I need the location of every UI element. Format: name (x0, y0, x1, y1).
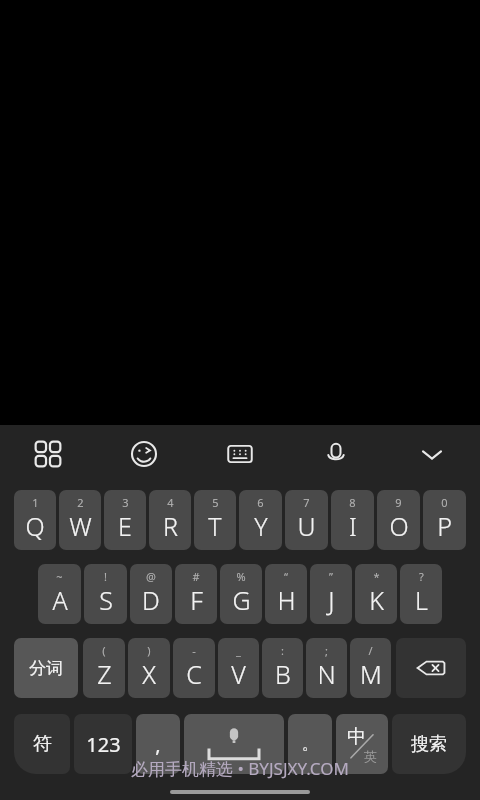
staticText: ? (419, 569, 424, 584)
staticText: 2 (77, 495, 84, 510)
staticText: F (190, 583, 203, 617)
button[interactable]: Backspace (396, 638, 466, 698)
staticText: 符 (33, 732, 52, 756)
staticText: J (328, 583, 335, 617)
staticText: “ (284, 569, 288, 584)
staticText: L (415, 583, 428, 617)
button[interactable]: 分词 (14, 638, 78, 698)
button[interactable]: Chinese English toggle (336, 714, 388, 774)
button[interactable]: 6 (239, 490, 282, 550)
staticText: O (389, 509, 409, 543)
button[interactable]: 7 (285, 490, 328, 550)
staticText: X (142, 657, 156, 691)
staticText: E (118, 509, 132, 543)
staticText: 中 (347, 725, 366, 749)
staticText: - (192, 643, 196, 658)
staticText: Z (97, 657, 112, 691)
staticText: ; (325, 643, 328, 658)
button[interactable]: - (173, 638, 215, 698)
staticText: ) (147, 643, 151, 658)
button[interactable]: _ (218, 638, 259, 698)
button[interactable]: 搜索 (392, 714, 466, 774)
staticText: # (192, 569, 200, 584)
staticText: 5 (212, 495, 219, 510)
staticText: 搜索 (411, 733, 447, 756)
staticText: , (155, 731, 161, 758)
button[interactable]: Emoji (96, 425, 192, 483)
staticText: 8 (349, 495, 356, 510)
button[interactable]: 符 (14, 714, 70, 774)
staticText: K (369, 583, 384, 617)
staticText: _ (236, 643, 241, 658)
button[interactable]: Voice input (288, 425, 384, 483)
staticText: A (52, 583, 68, 617)
staticText: @ (146, 569, 156, 584)
button[interactable]: 1 (14, 490, 56, 550)
button[interactable]: 2 (59, 490, 101, 550)
staticText: N (317, 657, 336, 691)
button[interactable]: “ (265, 564, 307, 624)
staticText: ( (102, 643, 106, 658)
button[interactable]: # (175, 564, 217, 624)
staticText: G (232, 583, 251, 617)
staticText: 6 (257, 495, 264, 510)
staticText: 3 (122, 495, 129, 510)
staticText: M (360, 657, 382, 691)
button[interactable]: 。 (288, 714, 332, 774)
button[interactable]: : (262, 638, 303, 698)
button[interactable]: 4 (149, 490, 191, 550)
button[interactable]: Space (184, 714, 284, 774)
button[interactable]: ( (83, 638, 125, 698)
button[interactable]: ! (84, 564, 127, 624)
staticText: R (163, 509, 178, 543)
staticText: P (437, 509, 452, 543)
staticText: / (368, 643, 373, 658)
button[interactable]: Keyboard layout (192, 425, 288, 483)
staticText: S (99, 583, 113, 617)
button[interactable]: 5 (194, 490, 236, 550)
button[interactable]: ) (128, 638, 170, 698)
button[interactable]: * (355, 564, 397, 624)
staticText: 9 (395, 495, 402, 510)
staticText: 1 (32, 495, 39, 510)
staticText: V (231, 657, 246, 691)
staticText: : (281, 643, 284, 658)
staticText: ! (104, 569, 107, 584)
staticText: 123 (86, 731, 121, 758)
button[interactable]: ” (310, 564, 352, 624)
button[interactable]: Hide keyboard (384, 425, 480, 483)
button[interactable]: ~ (38, 564, 81, 624)
staticText: D (142, 583, 160, 617)
staticText: Q (25, 509, 45, 543)
staticText: U (297, 509, 316, 543)
staticText: I (349, 509, 357, 543)
staticText: 0 (441, 495, 448, 510)
staticText: H (277, 583, 296, 617)
staticText: % (236, 569, 246, 584)
staticText: 4 (167, 495, 174, 510)
staticText: T (208, 509, 222, 543)
staticText: 7 (303, 495, 310, 510)
staticText: 。 (302, 734, 318, 754)
button[interactable]: 9 (377, 490, 420, 550)
staticText: W (69, 509, 92, 543)
button[interactable]: 123 (74, 714, 132, 774)
button[interactable]: 8 (331, 490, 374, 550)
staticText: C (186, 657, 202, 691)
staticText: 分词 (29, 658, 63, 679)
button[interactable]: ? (400, 564, 442, 624)
button[interactable]: ; (306, 638, 347, 698)
staticText: 必用手机精选 • BYJSJXY.COM (131, 757, 349, 780)
staticText: 英 (364, 748, 377, 764)
button[interactable]: / (350, 638, 391, 698)
staticText: ~ (56, 569, 63, 584)
staticText: * (373, 569, 380, 584)
button[interactable]: Keyboard menu (0, 425, 96, 483)
button[interactable]: , (136, 714, 180, 774)
staticText: Y (254, 509, 268, 543)
button[interactable]: % (220, 564, 262, 624)
staticText: B (275, 657, 291, 691)
button[interactable]: 0 (423, 490, 466, 550)
button[interactable]: @ (130, 564, 172, 624)
button[interactable]: 3 (104, 490, 146, 550)
